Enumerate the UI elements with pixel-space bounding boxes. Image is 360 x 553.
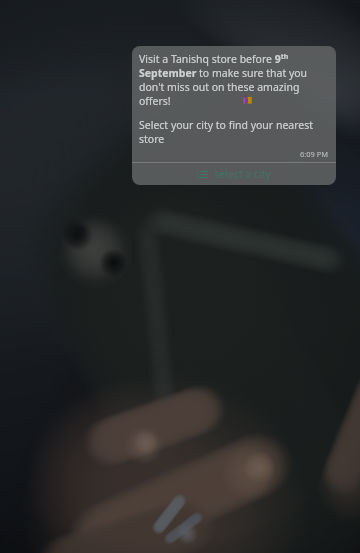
button[interactable]: List [132,163,336,185]
other: List [197,170,208,179]
button[interactable]: Visit a Tanishq store before 9th Septemb… [132,46,336,185]
staticText: Visit a Tanishq store before 9th Septemb… [139,52,329,108]
staticText: select a city [214,167,271,181]
staticText: 6:09 PM [300,149,329,159]
staticText: Select your city to find your nearest st… [139,118,329,146]
